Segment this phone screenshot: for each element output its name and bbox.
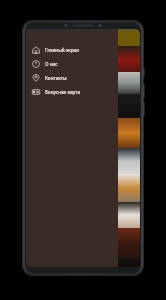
staticText: Контакты: [45, 75, 67, 81]
button[interactable]: [26, 46, 140, 72]
button[interactable]: Контакты: [26, 71, 118, 85]
other: Бонусная карта: [32, 88, 40, 96]
button[interactable]: [26, 94, 140, 118]
staticText: Бонусная карта: [45, 89, 81, 95]
button[interactable]: [26, 258, 140, 267]
staticText: Главный экран: [45, 47, 80, 53]
button[interactable]: [26, 202, 140, 228]
other: Контакты: [32, 74, 40, 82]
button[interactable]: [26, 72, 140, 94]
button[interactable]: [26, 148, 140, 174]
button[interactable]: О нас: [26, 57, 118, 71]
button[interactable]: [26, 118, 140, 148]
other: О нас: [32, 60, 40, 68]
button[interactable]: [26, 228, 140, 258]
button[interactable]: [26, 29, 140, 46]
staticText: О нас: [45, 61, 58, 67]
other: Главный экран: [32, 46, 40, 54]
button[interactable]: Главный экран: [26, 43, 118, 57]
button[interactable]: [26, 174, 140, 202]
button[interactable]: Бонусная карта: [26, 85, 118, 99]
